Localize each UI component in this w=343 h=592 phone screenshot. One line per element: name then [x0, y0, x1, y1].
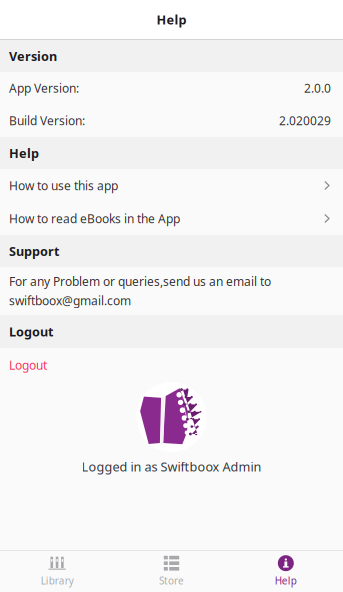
button[interactable]: Library	[0, 551, 114, 592]
staticText: How to use this app	[9, 177, 118, 194]
staticText: Version	[9, 47, 57, 65]
staticText: swiftboox@gmail.com	[9, 292, 131, 309]
button[interactable]: How to use this app	[0, 169, 343, 202]
staticText: App Version:	[9, 80, 79, 96]
staticText: For any Problem or queries,send us an em…	[9, 273, 271, 289]
staticText: How to read eBooks in the App	[9, 210, 180, 227]
button[interactable]: How to read eBooks in the App	[0, 202, 343, 235]
button[interactable]: Logout	[0, 348, 343, 382]
staticText: Support	[9, 242, 59, 260]
button[interactable]: Help	[229, 551, 343, 592]
staticText: Logged in as Swiftboox Admin	[81, 458, 261, 475]
staticText: Help	[9, 144, 39, 162]
staticText: Build Version:	[9, 112, 85, 129]
staticText: Logout	[9, 323, 53, 340]
staticText: Library	[41, 574, 74, 587]
button[interactable]: Store	[114, 551, 229, 592]
staticText: Help	[275, 574, 297, 587]
staticText: Help	[156, 11, 186, 28]
staticText: 2.020029	[279, 112, 331, 129]
staticText: 2.0.0	[304, 80, 331, 96]
staticText: Logout	[9, 357, 47, 373]
staticText: Store	[159, 574, 184, 587]
